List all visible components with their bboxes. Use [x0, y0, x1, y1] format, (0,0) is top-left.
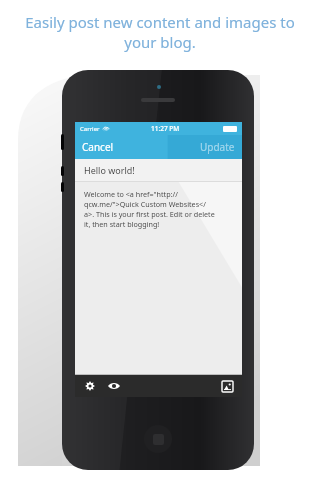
button[interactable]: Cancel [75, 136, 121, 158]
staticText: 11:27 PM [151, 124, 180, 133]
button[interactable]: Insert image [220, 379, 235, 394]
staticText: your blog. [10, 32, 310, 52]
staticText: qcw.me/">Quick Custom Websites</ [84, 199, 206, 209]
button[interactable]: Hello world! [75, 159, 242, 181]
staticText: Hello world! [84, 164, 135, 176]
button[interactable]: Update [193, 136, 242, 158]
staticText: Easily post new content and images to [10, 12, 310, 32]
staticText: Cancel [82, 140, 114, 154]
staticText: Update [200, 140, 235, 154]
staticText: a>. This is your first post. Edit or del… [84, 209, 215, 219]
staticText: Carrier [80, 125, 100, 133]
button[interactable]: Preview [105, 379, 123, 393]
staticText: it, then start blogging! [84, 219, 160, 229]
button[interactable]: Settings [82, 378, 98, 394]
staticText: Welcome to <a href="http:// [84, 189, 178, 199]
